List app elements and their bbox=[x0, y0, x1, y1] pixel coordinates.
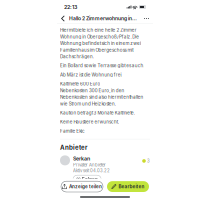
button[interactable]: Bearbeiten bbox=[107, 181, 149, 192]
staticText: Bearbeiten bbox=[119, 184, 145, 189]
staticText: Keine Haustiere erwünscht. bbox=[60, 119, 119, 125]
staticText: Privater Anbieter bbox=[73, 162, 106, 168]
button[interactable]: Zurück bbox=[60, 14, 66, 22]
staticText: Folgen bbox=[82, 177, 98, 182]
staticText: Aktiv seit 04.03.22 bbox=[73, 168, 110, 173]
button[interactable]: Mehr bbox=[143, 14, 150, 22]
staticText: Hiermit biete ich eine helle 2 Zimmer Wo… bbox=[60, 27, 141, 59]
staticText: Hallo 2 Zimmerwohnung in einem Zw… bbox=[69, 15, 137, 21]
button[interactable]: Anzeige teilen bbox=[61, 181, 103, 192]
staticText: 3 bbox=[147, 158, 150, 164]
staticText: Kaltmiete 600 Euro Nebenkosten 300 Euro,… bbox=[60, 81, 144, 107]
staticText: Kaution beträgt 3 Monate Kaltmiete. bbox=[60, 110, 135, 116]
button[interactable]: Folgen bbox=[73, 175, 101, 184]
staticText: Ab März ist die Wohnung frei. bbox=[60, 72, 122, 78]
staticText: 22:13 bbox=[64, 4, 77, 10]
staticText: Anzeige teilen bbox=[69, 184, 102, 189]
staticText: Familie Ekic bbox=[60, 128, 85, 134]
staticText: Ein Bollard sowie Terrasse gibt es auch. bbox=[60, 63, 144, 68]
staticText: Anbieter bbox=[60, 144, 87, 151]
staticText: Serkan bbox=[73, 155, 90, 162]
